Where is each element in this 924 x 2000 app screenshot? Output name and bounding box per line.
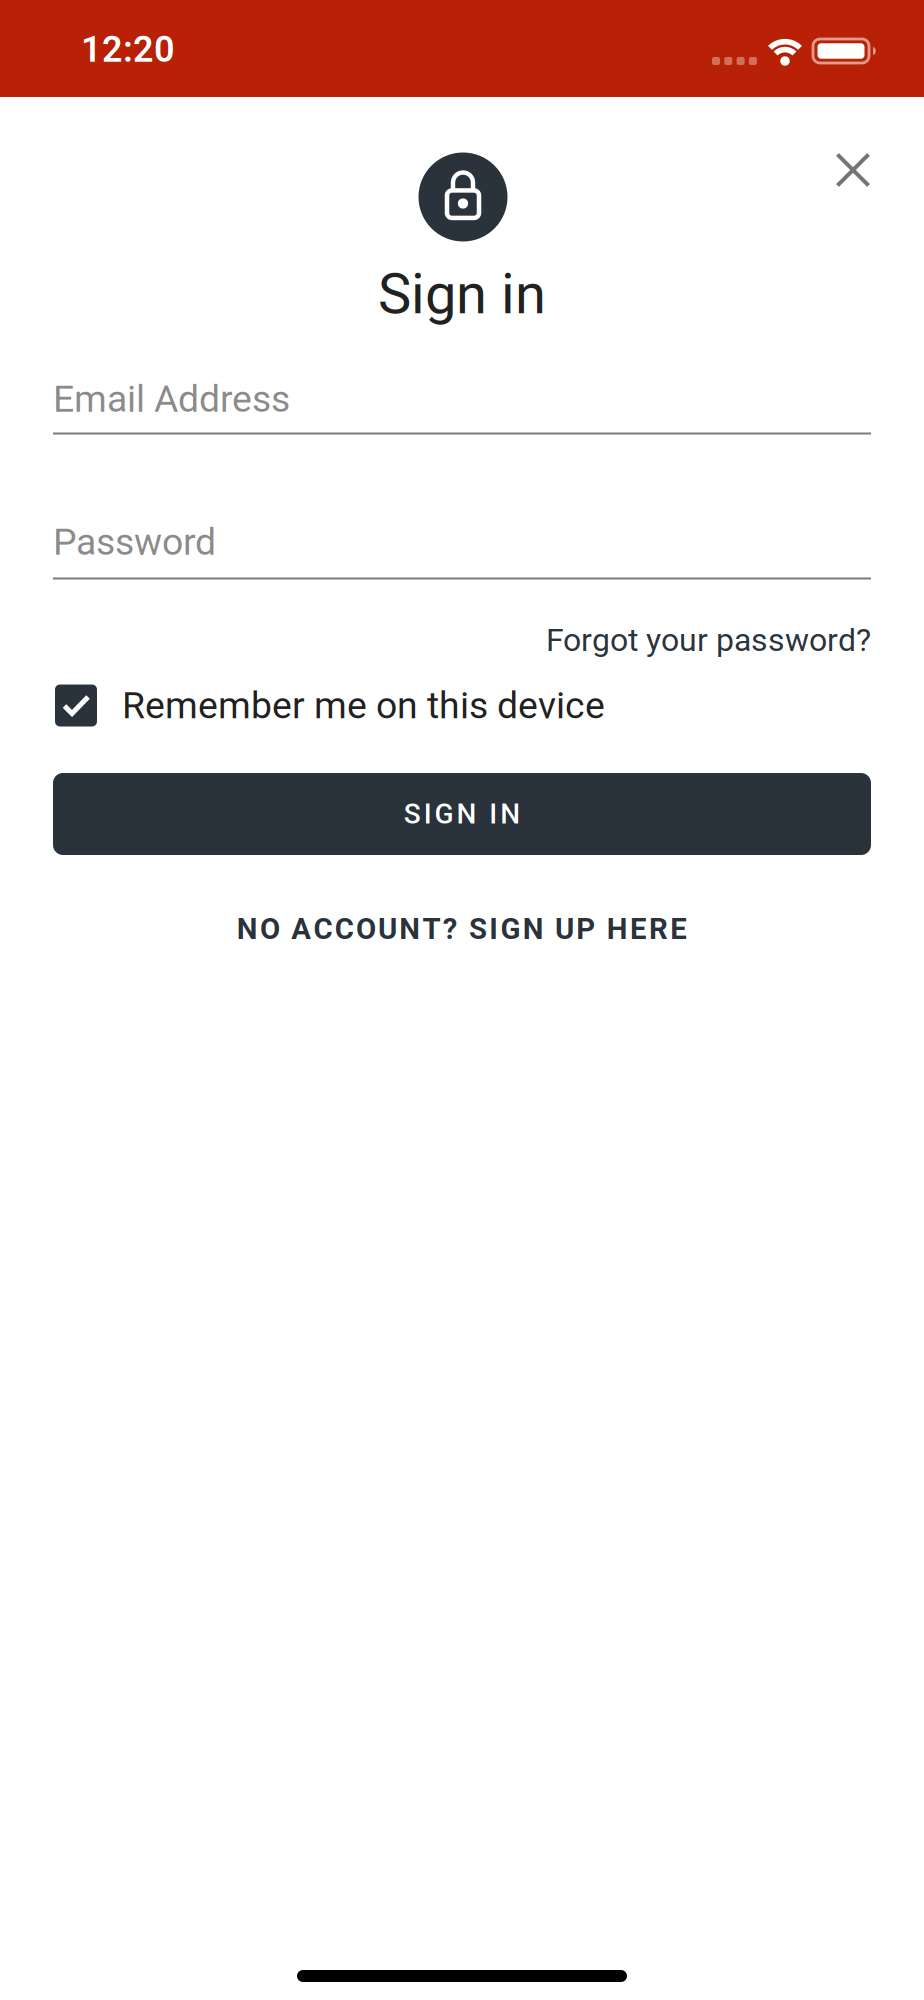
staticText: Remember me on this device bbox=[122, 684, 605, 727]
staticText: Forgot your password? bbox=[546, 622, 871, 658]
staticText: E bbox=[630, 912, 647, 946]
staticText: H bbox=[607, 912, 628, 946]
staticText: R bbox=[649, 912, 668, 946]
staticText: A bbox=[291, 912, 311, 946]
button[interactable]: Password bbox=[53, 515, 871, 579]
staticText: O bbox=[356, 912, 376, 946]
staticText: N bbox=[237, 912, 258, 946]
staticText: C bbox=[335, 912, 354, 946]
staticText: P bbox=[576, 912, 595, 946]
staticText: G bbox=[435, 798, 454, 830]
staticText: ? bbox=[443, 912, 458, 946]
staticText: T bbox=[422, 912, 440, 946]
staticText: I bbox=[489, 912, 498, 946]
staticText: Password bbox=[53, 521, 216, 563]
button[interactable]: N bbox=[237, 912, 687, 946]
staticText: N bbox=[500, 798, 520, 830]
staticText: I bbox=[489, 798, 497, 830]
button[interactable]: Email Address bbox=[53, 374, 871, 435]
staticText: G bbox=[500, 912, 520, 946]
staticText: 12:20 bbox=[81, 29, 175, 70]
staticText: C bbox=[313, 912, 332, 946]
staticText: N bbox=[399, 912, 420, 946]
staticText: U bbox=[555, 912, 574, 946]
button[interactable]: S bbox=[53, 773, 871, 855]
button[interactable]: Close bbox=[830, 147, 875, 192]
staticText: U bbox=[378, 912, 397, 946]
staticText: O bbox=[260, 912, 280, 946]
staticText: N bbox=[456, 798, 476, 830]
staticText: N bbox=[523, 912, 544, 946]
staticText: I bbox=[424, 798, 432, 830]
staticText: Email Address bbox=[53, 378, 290, 420]
staticText: S bbox=[469, 912, 487, 946]
button[interactable]: Remember me on this device bbox=[53, 684, 871, 727]
staticText: Sign in bbox=[378, 262, 546, 326]
button[interactable]: Forgot your password? bbox=[546, 622, 871, 658]
staticText: E bbox=[670, 912, 687, 946]
staticText: S bbox=[404, 798, 421, 830]
